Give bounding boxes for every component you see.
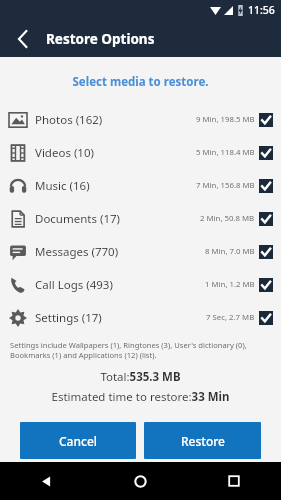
staticText: Settings (17) <box>35 310 102 326</box>
staticText: Select media to restore. <box>0 74 281 90</box>
button[interactable]: Call Logs (493) <box>0 268 281 301</box>
button[interactable]: Videos (10) <box>0 136 281 169</box>
staticText: 8 Min, 7.0 MB <box>205 246 255 257</box>
button[interactable]: Recent apps <box>187 462 281 500</box>
button[interactable]: Home <box>93 462 187 500</box>
staticText: Photos (162) <box>35 112 103 128</box>
staticText: Total:535.3 MB <box>0 369 281 385</box>
staticText: 11:56 <box>248 3 275 17</box>
staticText: Cancel <box>59 433 98 449</box>
staticText: 5 Min, 118.4 MB <box>196 147 255 158</box>
button[interactable]: Music (16) <box>0 169 281 202</box>
staticText: 1 Min, 1.2 MB <box>205 279 255 290</box>
staticText: Call Logs (493) <box>35 277 113 293</box>
button[interactable]: Back <box>0 462 93 500</box>
button[interactable]: Photos (162) <box>0 103 281 136</box>
button[interactable]: Back <box>10 26 36 52</box>
staticText: Settings include Wallpapers (1), Rington… <box>10 340 271 360</box>
button[interactable]: Settings (17) <box>0 301 281 334</box>
staticText: 9 Min, 198.5 MB <box>196 114 255 125</box>
staticText: Messages (770) <box>35 244 119 260</box>
button[interactable]: Restore <box>144 422 261 459</box>
staticText: 7 Min, 156.8 MB <box>196 180 255 191</box>
staticText: Music (16) <box>35 178 90 194</box>
button[interactable]: Messages (770) <box>0 235 281 268</box>
staticText: Videos (10) <box>35 145 94 161</box>
staticText: 7 Sec, 2.7 MB <box>206 312 255 323</box>
staticText: 2 Min, 50.8 MB <box>200 213 255 224</box>
staticText: Documents (17) <box>35 211 121 227</box>
staticText: Restore <box>181 433 225 449</box>
staticText: Estimated time to restore:33 Min <box>0 389 281 405</box>
button[interactable]: Cancel <box>20 422 136 459</box>
button[interactable]: Documents (17) <box>0 202 281 235</box>
staticText: Restore Options <box>46 30 155 48</box>
